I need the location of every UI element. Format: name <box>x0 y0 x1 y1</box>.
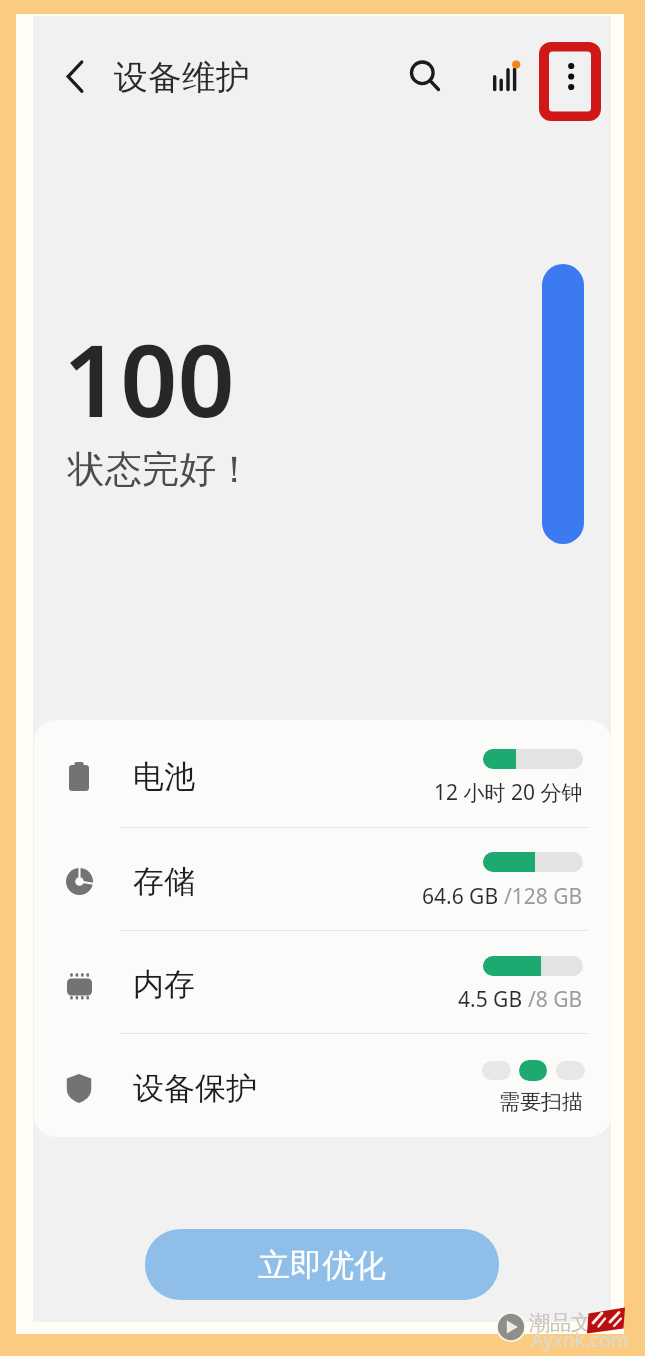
button[interactable]: Back <box>44 52 92 100</box>
staticText: 立即优化 <box>258 1245 386 1285</box>
button[interactable]: 内存 <box>34 930 611 1033</box>
staticText: 电池 <box>133 757 195 796</box>
staticText: 内存 <box>133 965 195 1004</box>
staticText: 100 <box>63 310 235 446</box>
button[interactable]: More options <box>539 42 601 121</box>
staticText: 64.6 GB <box>422 882 504 911</box>
button[interactable]: Search <box>398 49 448 99</box>
staticText: 需要扫描 <box>499 1089 583 1115</box>
staticText: 12 小时 20 分钟 <box>434 778 583 807</box>
button[interactable]: 电池 <box>34 720 611 827</box>
staticText: Ayxnk.com <box>531 1327 629 1353</box>
staticText: 潮品文 <box>529 1310 592 1336</box>
staticText: 设备保护 <box>133 1069 257 1108</box>
button[interactable]: 存储 <box>34 827 611 930</box>
staticText: 存储 <box>133 862 195 901</box>
staticText: /8 GB <box>528 985 583 1014</box>
staticText: 4.5 GB <box>458 985 528 1014</box>
button[interactable]: 立即优化 <box>145 1229 499 1300</box>
staticText: /128 GB <box>504 882 583 911</box>
staticText: 状态完好！ <box>68 446 253 493</box>
button[interactable]: 设备保护 <box>34 1033 611 1137</box>
button[interactable]: Usage statistics <box>476 44 534 102</box>
staticText: 设备维护 <box>114 56 250 99</box>
